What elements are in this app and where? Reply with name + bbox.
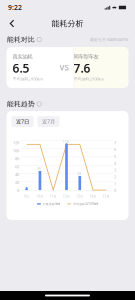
staticText: 5 (114, 154, 116, 159)
staticText: 近7月 (42, 118, 55, 125)
staticText: 15日 (103, 195, 110, 198)
staticText: 平均油耗L/100km (73, 76, 104, 81)
staticText: 0 (17, 188, 19, 193)
staticText: 34 (77, 172, 81, 175)
staticText: 20 (15, 180, 19, 185)
staticText: 100 (13, 148, 19, 153)
staticText: 9:22 (8, 3, 22, 12)
staticText: 13日 (76, 195, 83, 198)
staticText: 46 (37, 167, 41, 170)
staticText: 能耗对比 (7, 35, 35, 44)
staticText: VS (59, 62, 68, 73)
staticText: 80 (15, 156, 19, 161)
staticText: 同车型车友 (73, 53, 98, 60)
staticText: 110 (63, 140, 69, 144)
staticText: 行驶里程(km) (43, 202, 60, 206)
staticText: 4 (114, 160, 116, 166)
staticText: 9日 (24, 195, 29, 198)
staticText: 平均油耗L/100km (12, 76, 43, 81)
button[interactable]: 近7月 (37, 116, 59, 127)
staticText: 7.6 (73, 60, 90, 76)
staticText: 120 (13, 140, 19, 145)
staticText: 10日 (36, 195, 43, 198)
staticText: 平均油耗(L/100km) (73, 202, 98, 206)
staticText: 40 (15, 172, 19, 177)
staticText: 能耗分析 (51, 19, 83, 28)
staticText: 6.5 (12, 60, 29, 76)
staticText: 11日 (50, 195, 57, 198)
staticText: 最近七天 (04/09-04/15) (90, 37, 128, 42)
button[interactable]: Back (4, 15, 20, 31)
staticText: 真实油耗 (12, 53, 32, 60)
staticText: 近7日 (16, 118, 29, 125)
staticText: 6 (114, 147, 116, 152)
staticText: 能耗趋势 (7, 100, 35, 108)
staticText: 12日 (63, 195, 70, 198)
staticText: 60 (15, 164, 19, 169)
button[interactable]: 近7日 (11, 116, 33, 127)
staticText: 14日 (90, 195, 97, 198)
staticText: 0 (114, 188, 116, 193)
staticText: 3 (114, 167, 116, 173)
staticText: 7 (114, 140, 116, 145)
staticText: 1 (114, 181, 116, 186)
staticText: 2 (114, 174, 116, 179)
